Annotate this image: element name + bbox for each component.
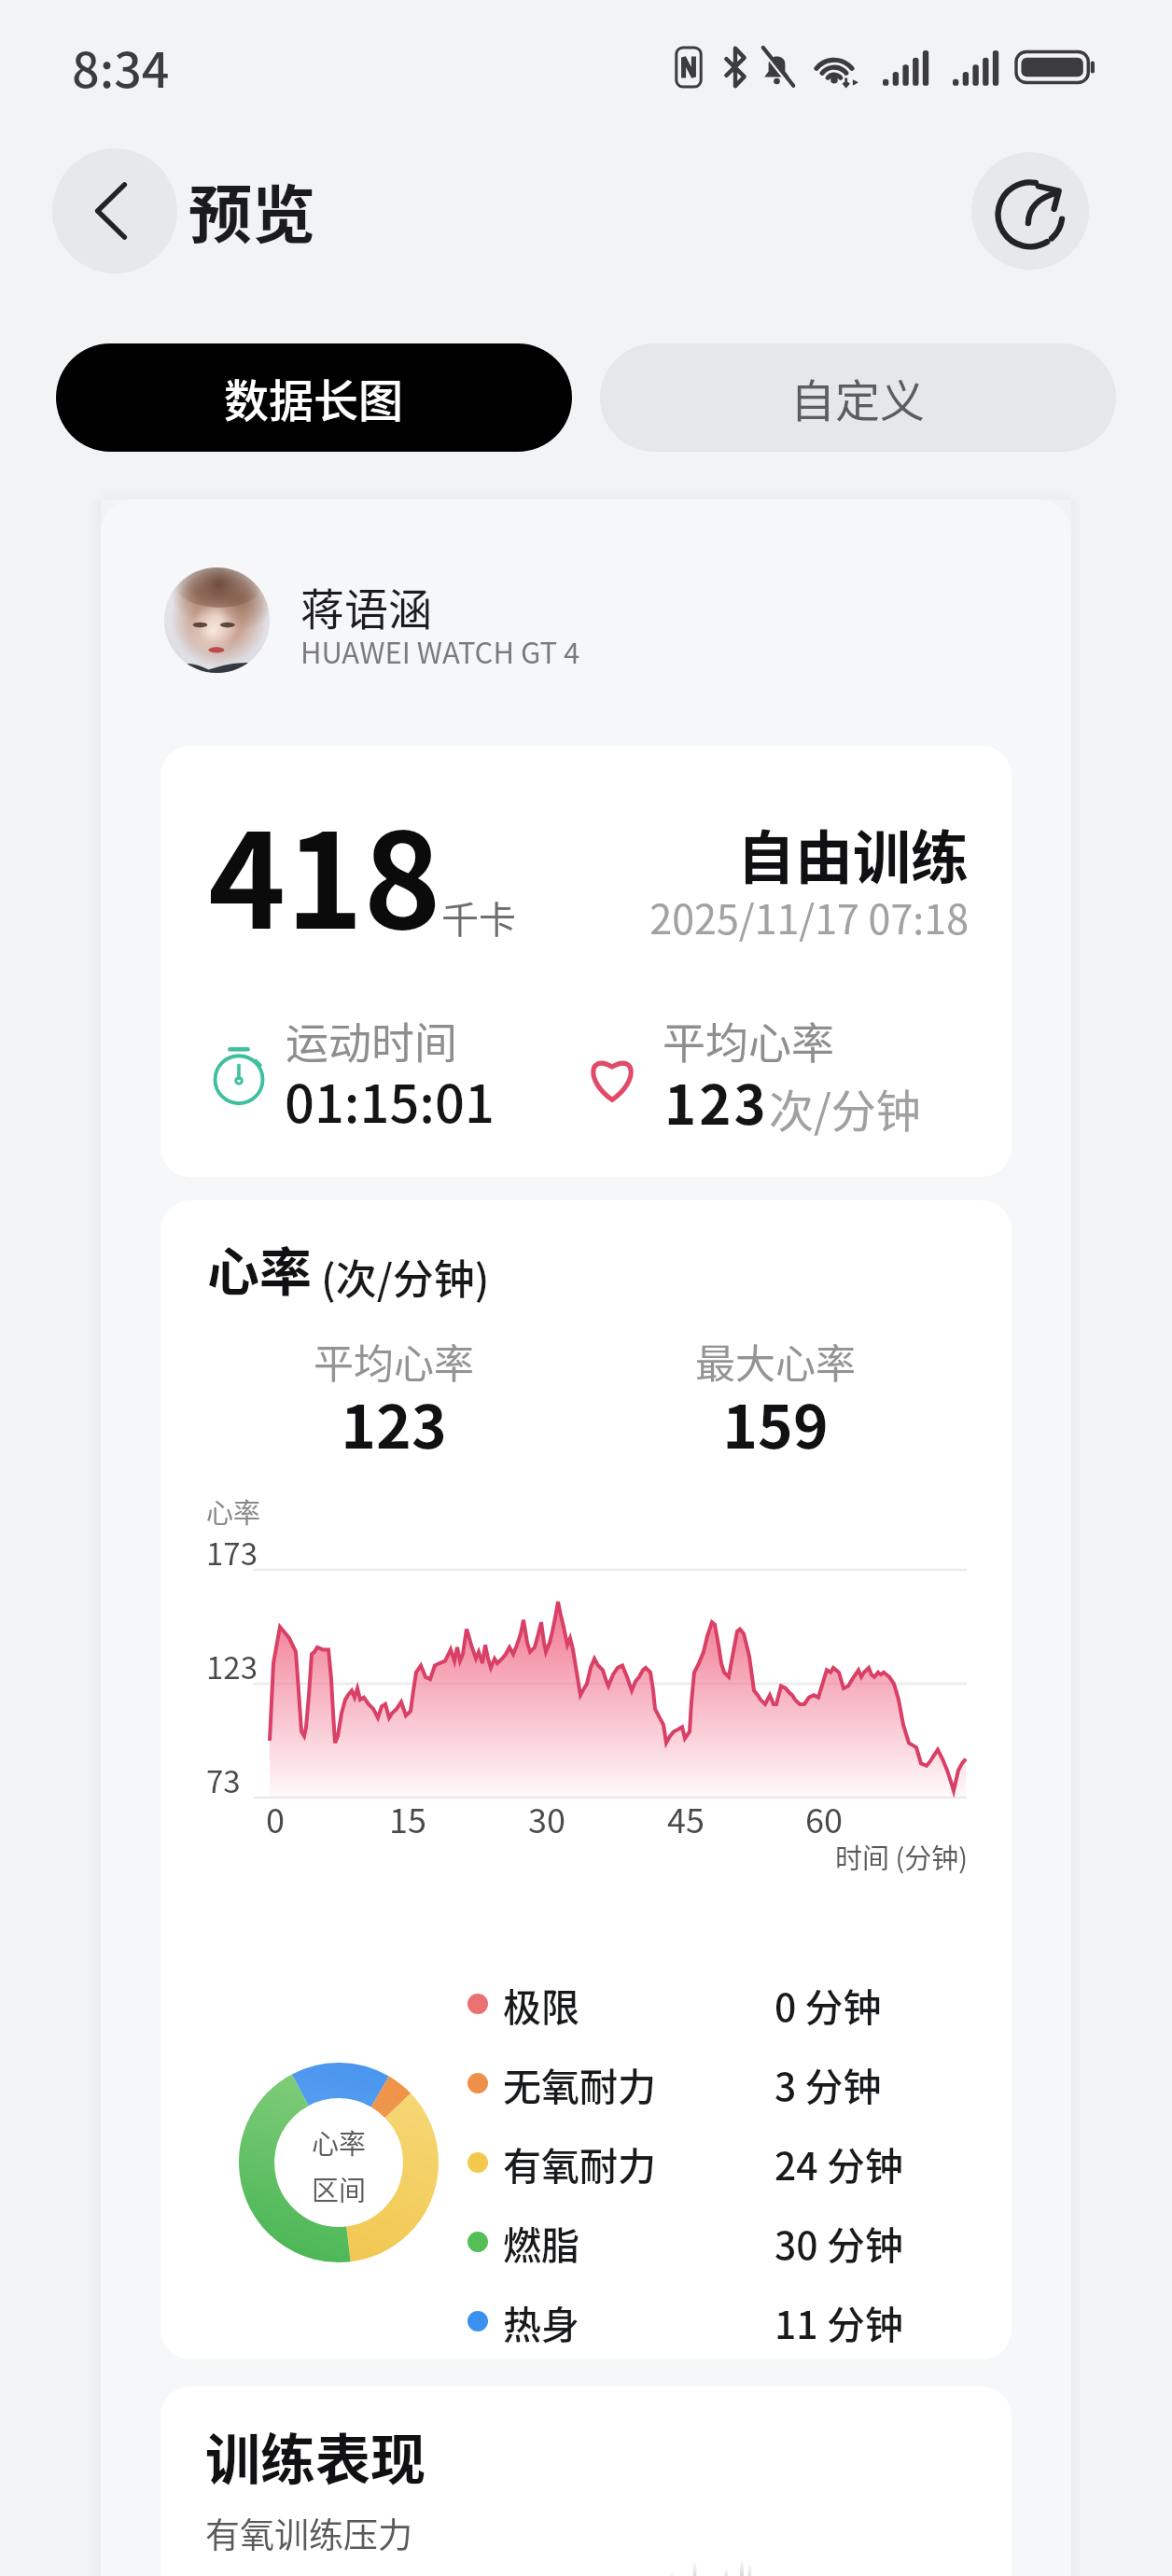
staticText: 训练表现 [205,2416,426,2496]
staticText: 01:15:01 [285,1062,495,1138]
staticText: 运动时间 [286,1009,457,1071]
button[interactable]: 数据长图 [56,343,572,452]
staticText: 15 [370,1794,445,1842]
staticText: 73 [206,1757,241,1802]
staticText: 0 [238,1794,313,1842]
staticText: 自定义 [790,365,926,430]
staticText: 热身 [503,2294,579,2349]
staticText: 123 [206,1644,258,1688]
staticText: 45 [649,1794,723,1842]
staticText: 有氧耐力 [503,2135,656,2191]
button[interactable]: Back [52,148,177,273]
staticText: 30 分钟 [774,2215,903,2270]
staticText: 蒋语涵 [300,574,432,637]
staticText: 千卡 [441,890,516,945]
staticText: 极限 [503,1977,579,2032]
staticText: HUAWEI WATCH GT 4 [300,630,580,672]
staticText: 0 分钟 [774,1977,882,2032]
staticText: 60 [787,1794,861,1842]
button[interactable]: 自定义 [600,343,1116,452]
staticText: 平均心率 [272,1332,515,1390]
staticText: 心率 [206,1491,261,1531]
staticText: 173 [206,1530,258,1575]
staticText: 2025/11/17 07:18 [524,888,969,945]
staticText: 11 分钟 [774,2294,903,2349]
staticText: 心率 [207,1230,312,1306]
staticText: 123 [272,1379,515,1466]
staticText: 有氧训练压力 [205,2508,412,2558]
staticText: 无氧耐力 [503,2056,656,2111]
staticText: 最大心率 [654,1332,897,1390]
staticText: 自由训练 [524,812,969,896]
staticText: 123 [664,1062,769,1141]
staticText: 燃脂 [503,2215,579,2270]
staticText: 30 [509,1794,584,1842]
staticText: (次/分钟) [321,1247,490,1307]
staticText: 3 分钟 [774,2056,882,2111]
staticText: 预览 [188,164,316,256]
staticText: 时间 (分钟) [720,1837,968,1876]
staticText: 次/分钟 [769,1075,921,1141]
staticText: 24 分钟 [774,2135,903,2191]
button[interactable]: Share [971,152,1089,270]
staticText: 平均心率 [663,1009,834,1071]
staticText: 418 [208,776,441,966]
staticText: 8:34 [72,32,170,102]
staticText: 数据长图 [224,365,404,430]
staticText: 心率 [312,2122,367,2162]
staticText: 区间 [312,2169,367,2208]
staticText: 159 [654,1379,897,1466]
